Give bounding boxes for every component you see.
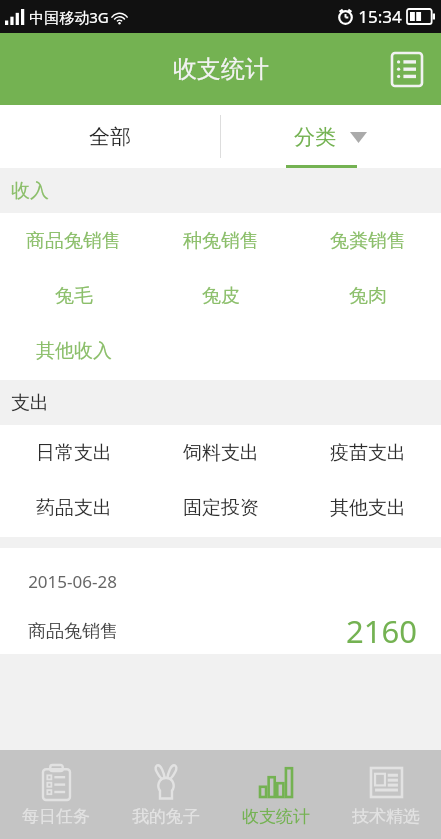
button[interactable]: 兔肉	[294, 268, 441, 323]
staticText: 收支统计	[173, 54, 269, 84]
button[interactable]: 疫苗支出	[294, 425, 441, 480]
button[interactable]: 每日任务	[0, 750, 111, 839]
button[interactable]: 药品支出	[0, 480, 147, 535]
staticText: 兔粪销售	[330, 229, 406, 253]
staticText: 2160	[346, 610, 417, 652]
button[interactable]: 我的兔子	[111, 750, 221, 839]
staticText: 饲料支出	[183, 441, 259, 465]
staticText: 其他收入	[36, 339, 112, 363]
staticText: 收入	[11, 179, 49, 203]
button[interactable]: 记录列表	[381, 43, 433, 95]
button[interactable]: 种兔销售	[147, 213, 294, 268]
button[interactable]: 商品兔销售	[0, 213, 147, 268]
button[interactable]: 饲料支出	[147, 425, 294, 480]
staticText: 技术精选	[352, 806, 420, 827]
button[interactable]: 兔毛	[0, 268, 147, 323]
staticText: 固定投资	[183, 496, 259, 520]
staticText: 兔毛	[55, 284, 93, 308]
staticText: 兔皮	[202, 284, 240, 308]
staticText: 收支统计	[242, 806, 310, 827]
button[interactable]: 兔皮	[147, 268, 294, 323]
staticText: 我的兔子	[132, 806, 200, 827]
staticText: 日常支出	[36, 441, 112, 465]
button[interactable]: 分类	[220, 105, 441, 168]
staticText: 商品兔销售	[26, 229, 121, 253]
staticText: 全部	[89, 124, 131, 150]
button[interactable]: 全部	[0, 105, 220, 168]
button[interactable]: 收支统计	[221, 750, 331, 839]
button[interactable]: 日常支出	[0, 425, 147, 480]
button[interactable]: 技术精选	[331, 750, 441, 839]
staticText: 2015-06-28	[28, 570, 117, 593]
staticText: 其他支出	[330, 496, 406, 520]
button[interactable]: 固定投资	[147, 480, 294, 535]
staticText: 种兔销售	[183, 229, 259, 253]
button[interactable]: 其他收入	[0, 323, 147, 378]
staticText: 疫苗支出	[330, 441, 406, 465]
staticText: 中国移动3G	[29, 7, 109, 27]
staticText: 分类	[294, 124, 336, 150]
staticText: 每日任务	[22, 806, 90, 827]
staticText: 15:34	[358, 5, 402, 28]
staticText: 商品兔销售	[28, 620, 118, 643]
staticText: 支出	[11, 391, 49, 415]
staticText: 兔肉	[349, 284, 387, 308]
button[interactable]: 2015-06-28	[0, 548, 441, 654]
button[interactable]: 兔粪销售	[294, 213, 441, 268]
button[interactable]: 其他支出	[294, 480, 441, 535]
staticText: 药品支出	[36, 496, 112, 520]
